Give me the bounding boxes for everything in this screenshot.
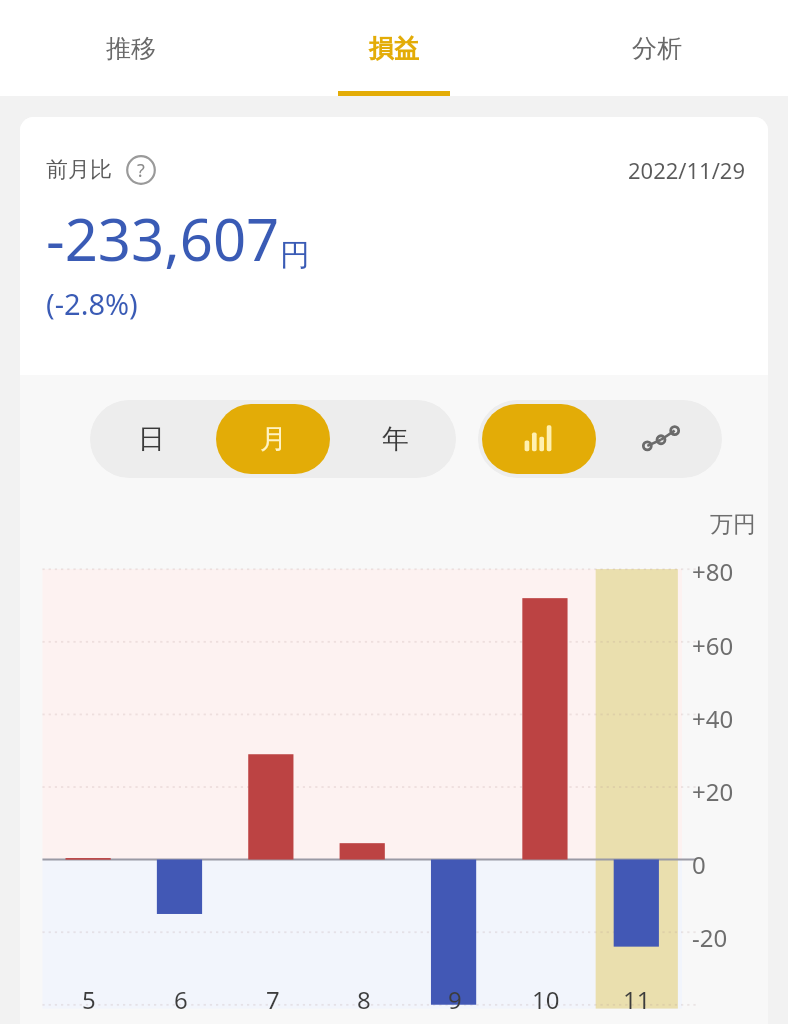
- staticText: -233,607: [46, 199, 280, 278]
- button[interactable]: 損益: [262, 0, 525, 96]
- staticText: 分析: [632, 33, 682, 64]
- staticText: -20: [692, 921, 728, 954]
- staticText: 0: [692, 848, 706, 881]
- staticText: 日: [138, 422, 165, 456]
- staticText: +20: [692, 775, 734, 808]
- staticText: +60: [692, 629, 734, 662]
- button[interactable]: Help: [124, 153, 158, 187]
- staticText: 推移: [106, 33, 156, 64]
- staticText: 8: [357, 983, 371, 1016]
- staticText: 6: [174, 983, 188, 1016]
- staticText: 万円: [710, 510, 756, 539]
- staticText: +40: [692, 702, 734, 735]
- button[interactable]: 推移: [0, 0, 262, 96]
- button[interactable]: Line chart: [604, 404, 718, 474]
- staticText: 9: [448, 983, 462, 1016]
- staticText: 7: [266, 983, 280, 1016]
- staticText: 円: [280, 236, 310, 274]
- button[interactable]: 月: [216, 404, 330, 474]
- staticText: (-2.8%): [46, 284, 138, 323]
- button[interactable]: 年: [338, 404, 452, 474]
- staticText: +80: [692, 555, 734, 588]
- staticText: 月: [260, 422, 287, 456]
- button[interactable]: 日: [94, 404, 208, 474]
- staticText: 2022/11/29: [628, 155, 746, 185]
- staticText: 損益: [369, 33, 419, 64]
- staticText: 10: [532, 983, 560, 1016]
- button[interactable]: 分析: [525, 0, 788, 96]
- staticText: 前月比: [46, 156, 112, 184]
- staticText: 11: [623, 983, 651, 1016]
- staticText: 5: [82, 983, 96, 1016]
- staticText: 年: [382, 422, 409, 456]
- staticText: ?: [137, 158, 145, 183]
- button[interactable]: Bar chart: [482, 404, 596, 474]
